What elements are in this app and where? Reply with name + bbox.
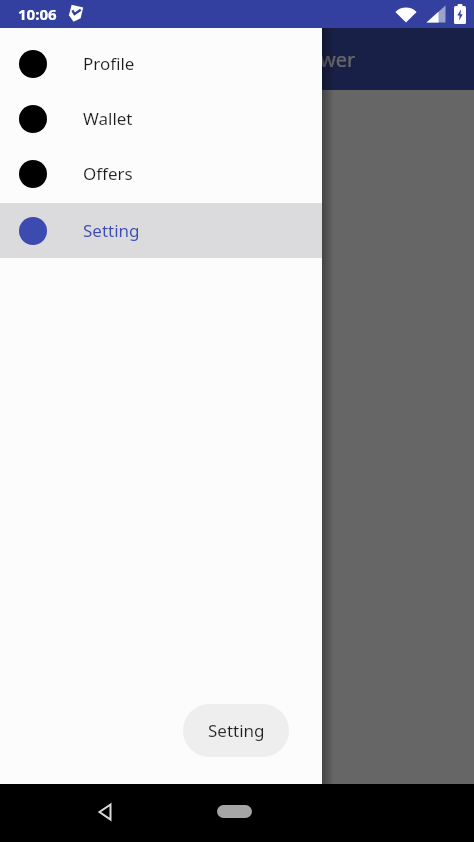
staticText: Navigation Drawer: [179, 46, 356, 73]
button[interactable]: Profile: [0, 36, 322, 91]
staticText: 10:06: [18, 4, 57, 24]
staticText: Offers: [83, 162, 133, 185]
button[interactable]: Wallet: [0, 91, 322, 146]
staticText: Profile: [83, 52, 135, 75]
staticText: Wallet: [83, 107, 133, 130]
button[interactable]: Setting: [183, 704, 289, 757]
button[interactable]: Setting: [0, 203, 322, 258]
staticText: Setting: [208, 719, 265, 742]
button[interactable]: [217, 805, 252, 818]
button[interactable]: Offers: [0, 146, 322, 201]
staticText: Setting: [83, 219, 140, 242]
